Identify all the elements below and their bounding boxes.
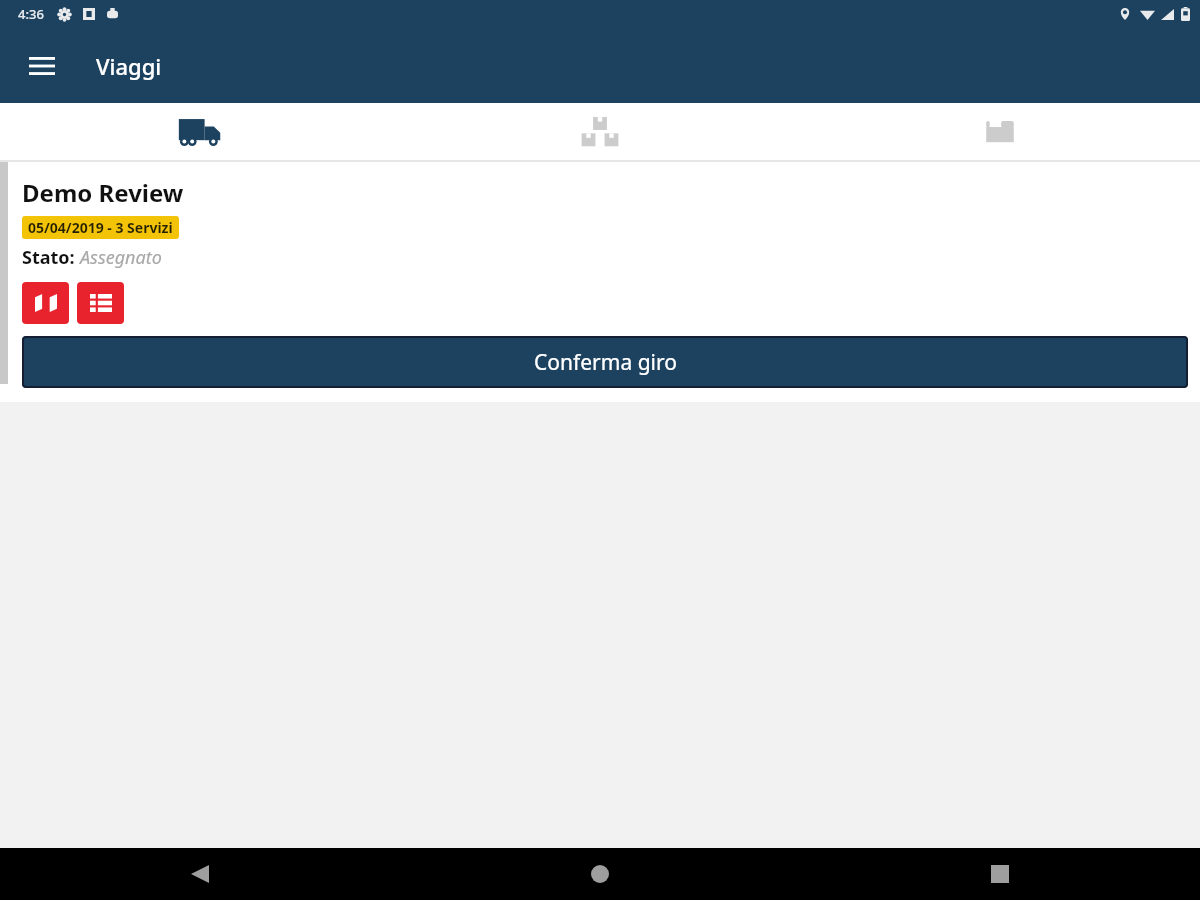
button[interactable]: Single package xyxy=(800,103,1200,160)
button[interactable]: Conferma giro xyxy=(22,336,1188,388)
staticText: Assegnato xyxy=(80,245,162,270)
button[interactable]: Back xyxy=(0,848,400,900)
button[interactable]: Trips xyxy=(0,103,400,160)
button[interactable]: Home xyxy=(400,848,800,900)
staticText: 05/04/2019 - 3 Servizi xyxy=(28,218,173,237)
button[interactable]: Show list xyxy=(77,282,124,324)
button[interactable]: Show map xyxy=(22,282,69,324)
staticText: Conferma giro xyxy=(534,348,677,377)
button[interactable]: Recent apps xyxy=(800,848,1200,900)
staticText: Stato: xyxy=(22,245,80,270)
staticText: Demo Review xyxy=(22,176,184,209)
staticText: Viaggi xyxy=(96,51,162,81)
staticText: 4:36 xyxy=(18,5,44,23)
button[interactable]: Packages xyxy=(400,103,800,160)
button[interactable]: Open navigation menu xyxy=(18,42,66,90)
